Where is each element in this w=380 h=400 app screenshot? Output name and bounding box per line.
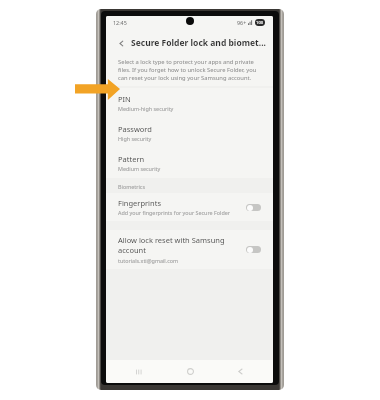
staticText: Biometrics — [118, 183, 145, 190]
staticText: High security — [118, 135, 152, 142]
staticText: 96+ — [237, 19, 247, 26]
staticText: Add your fingerprints for your Secure Fo… — [118, 209, 231, 216]
staticText: Medium security — [118, 165, 161, 172]
staticText: Allow lock reset with Samsung account — [118, 235, 240, 255]
staticText: Password — [118, 124, 152, 134]
button[interactable]: Password — [106, 118, 273, 148]
staticText: Pattern — [118, 154, 145, 164]
button[interactable]: Recents — [122, 360, 156, 383]
button[interactable]: Home — [173, 360, 207, 383]
staticText: Fingerprints — [118, 198, 161, 208]
staticText: Select a lock type to protect your apps … — [118, 58, 260, 82]
button[interactable]: Back — [223, 360, 257, 383]
other: Arrow pointing to PIN — [75, 79, 120, 100]
staticText: Secure Folder lock and biomet... — [131, 37, 266, 49]
button[interactable]: Back — [112, 34, 130, 52]
button[interactable]: Allow lock reset with Samsung account — [106, 230, 273, 269]
button[interactable]: Toggle — [246, 246, 261, 253]
button[interactable]: Pattern — [106, 148, 273, 178]
staticText: 12:45 — [113, 19, 127, 26]
button[interactable]: Toggle — [246, 204, 261, 211]
button[interactable]: PIN — [106, 88, 273, 118]
button[interactable]: Fingerprints — [106, 193, 273, 221]
staticText: 100 — [256, 20, 264, 26]
staticText: Medium-high security — [118, 105, 174, 112]
staticText: PIN — [118, 94, 131, 104]
staticText: tutorials.xti@gmail.com — [118, 257, 179, 264]
